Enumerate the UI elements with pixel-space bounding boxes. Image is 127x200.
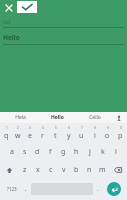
staticText: n <box>87 165 92 175</box>
staticText: o <box>105 131 110 141</box>
staticText: a <box>10 147 14 157</box>
staticText: 5 <box>55 126 57 130</box>
button[interactable]: Close <box>3 2 14 13</box>
staticText: m <box>99 165 106 175</box>
staticText: v <box>62 165 66 175</box>
button[interactable]: Enter <box>107 182 121 196</box>
button[interactable]: l <box>109 143 122 161</box>
button[interactable]: c <box>44 161 57 179</box>
button[interactable]: z <box>18 161 31 179</box>
staticText: list <box>3 18 11 25</box>
staticText: l <box>115 147 117 157</box>
button[interactable]: . <box>93 179 103 199</box>
staticText: z <box>23 165 27 175</box>
staticText: Hela <box>15 114 26 121</box>
staticText: g <box>61 147 66 157</box>
staticText: j <box>89 147 91 157</box>
button[interactable]: m <box>96 161 109 179</box>
staticText: 6 <box>68 126 70 130</box>
staticText: b <box>74 165 79 175</box>
staticText: , <box>25 185 27 193</box>
button[interactable]: Hello <box>39 112 76 123</box>
staticText: 9 <box>107 126 109 130</box>
button[interactable]: j <box>83 143 96 161</box>
staticText: u <box>79 131 84 141</box>
button[interactable]: s <box>18 143 31 161</box>
staticText: 3 <box>29 126 31 130</box>
staticText: 4 <box>42 126 44 130</box>
button[interactable]: a <box>5 143 18 161</box>
staticText: . <box>97 185 99 193</box>
button[interactable]: Voice input <box>113 112 125 123</box>
button[interactable]: b <box>70 161 83 179</box>
button[interactable]: k <box>96 143 109 161</box>
staticText: Hello <box>51 114 64 121</box>
staticText: q <box>4 131 9 141</box>
staticText: w <box>15 131 21 141</box>
staticText: Hello <box>3 33 20 42</box>
staticText: 8 <box>94 126 96 130</box>
button[interactable]: 4 <box>36 124 49 143</box>
button[interactable]: Done <box>17 1 37 13</box>
button[interactable]: Hela <box>2 112 39 123</box>
staticText: y <box>67 131 71 141</box>
staticText: f <box>49 147 52 157</box>
staticText: t <box>54 131 57 141</box>
button[interactable]: Cello <box>76 112 113 123</box>
button[interactable]: x <box>31 161 44 179</box>
button[interactable]: 8 <box>88 124 101 143</box>
button[interactable]: Shift <box>0 161 18 179</box>
staticText: d <box>35 147 40 157</box>
staticText: p <box>118 131 123 141</box>
staticText: k <box>101 147 105 157</box>
staticText: 2 <box>17 126 19 130</box>
button[interactable]: ?123 <box>2 179 21 199</box>
button[interactable]: 7 <box>75 124 88 143</box>
button[interactable]: 2 <box>12 124 24 143</box>
staticText: h <box>74 147 79 157</box>
button[interactable]: n <box>83 161 96 179</box>
staticText: r <box>41 131 44 141</box>
button[interactable]: 0 <box>114 124 127 143</box>
button[interactable]: Backspace <box>109 161 127 179</box>
staticText: Cello <box>89 114 101 121</box>
staticText: ?123 <box>7 186 17 192</box>
button[interactable]: g <box>57 143 70 161</box>
staticText: 7 <box>81 126 83 130</box>
button[interactable]: , <box>21 179 31 199</box>
button[interactable]: 9 <box>101 124 114 143</box>
button[interactable]: 1 <box>0 124 12 143</box>
staticText: e <box>28 131 32 141</box>
staticText: s <box>23 147 27 157</box>
button[interactable]: f <box>44 143 57 161</box>
staticText: c <box>49 165 53 175</box>
button[interactable]: v <box>57 161 70 179</box>
button[interactable]: 6 <box>62 124 75 143</box>
staticText: 0 <box>120 126 122 130</box>
button[interactable]: 3 <box>24 124 36 143</box>
button[interactable]: 5 <box>49 124 62 143</box>
button[interactable]: d <box>31 143 44 161</box>
button[interactable]: h <box>70 143 83 161</box>
staticText: i <box>94 131 96 141</box>
staticText: x <box>36 165 40 175</box>
staticText: 1 <box>6 126 8 130</box>
